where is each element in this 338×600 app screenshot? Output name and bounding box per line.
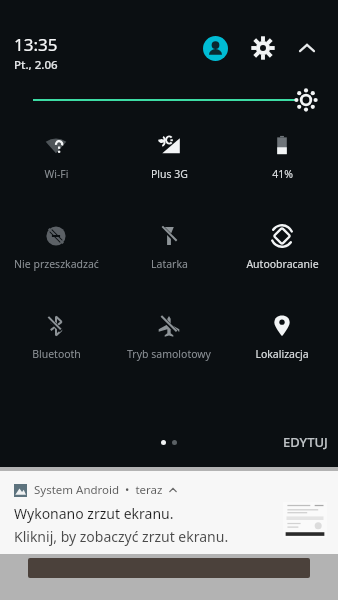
button[interactable]: Autoobracanie	[228, 222, 336, 273]
staticText: Wi-Fi	[44, 167, 69, 181]
button[interactable]: Tryb samolotowy	[115, 312, 223, 363]
button[interactable]: Plus 3G	[115, 132, 223, 183]
button[interactable]: Settings	[249, 34, 277, 62]
staticText: 41%	[272, 167, 293, 181]
button[interactable]: Latarka	[115, 222, 223, 273]
staticText: Pt., 2.06	[14, 57, 58, 73]
button[interactable]: Collapse	[293, 34, 321, 62]
staticText: Kliknij, by zobaczyć zrzut ekranu.	[14, 527, 229, 546]
staticText: Tryb samolotowy	[127, 347, 211, 361]
staticText: Latarka	[151, 257, 188, 271]
staticText: Nie przeszkadzać	[14, 257, 99, 271]
button[interactable]: EDYTUJ	[283, 433, 328, 451]
staticText: Plus 3G	[151, 167, 188, 181]
button[interactable]: User	[203, 36, 228, 61]
button[interactable]: System Android • teraz	[0, 471, 338, 554]
staticText: 13:35	[14, 33, 58, 56]
button[interactable]: Wi-Fi	[2, 132, 110, 183]
button[interactable]: 41%	[228, 132, 336, 183]
button[interactable]: Brightness	[0, 86, 338, 114]
button[interactable]: Nie przeszkadzać	[2, 222, 110, 273]
button[interactable]: Lokalizacja	[228, 312, 336, 363]
staticText: System Android • teraz	[34, 482, 163, 498]
staticText: Bluetooth	[32, 347, 81, 361]
button[interactable]: Bluetooth	[2, 312, 110, 363]
staticText: Wykonano zrzut ekranu.	[14, 504, 174, 523]
staticText: Autoobracanie	[246, 257, 319, 271]
staticText: EDYTUJ	[283, 433, 328, 451]
staticText: Lokalizacja	[255, 347, 309, 361]
